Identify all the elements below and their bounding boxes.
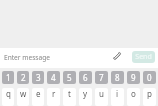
staticText: 6 [83,72,88,83]
button[interactable]: 5 [63,71,76,84]
button[interactable]: 8 [111,71,124,84]
button[interactable]: Send [132,51,155,63]
staticText: 7 [99,72,104,83]
staticText: 0 [147,72,152,83]
staticText: o [131,88,136,99]
staticText: i [116,88,119,99]
button[interactable]: 6 [79,71,92,84]
staticText: 2 [21,72,26,83]
staticText: w [20,88,27,99]
button[interactable]: Attach file [109,49,124,64]
button[interactable]: t [63,88,76,106]
button[interactable]: i [111,88,124,106]
staticText: Enter message [4,53,50,62]
staticText: Send [135,52,152,62]
staticText: y [83,88,88,99]
staticText: p [147,88,152,99]
staticText: 4 [51,72,56,83]
button[interactable]: r [47,88,60,106]
button[interactable]: q [2,88,14,106]
staticText: q [6,88,11,99]
staticText: e [36,88,41,99]
staticText: 8 [115,72,120,83]
button[interactable]: 3 [32,71,44,84]
button[interactable]: 0 [143,71,156,84]
button[interactable]: e [32,88,44,106]
staticText: 3 [36,72,41,83]
button[interactable]: y [79,88,92,106]
button[interactable]: u [95,88,108,106]
button[interactable]: 4 [47,71,60,84]
button[interactable]: 2 [17,71,29,84]
button[interactable]: o [127,88,140,106]
button[interactable]: 9 [127,71,140,84]
button[interactable]: 7 [95,71,108,84]
staticText: 1 [6,72,11,83]
button[interactable]: p [143,88,156,106]
staticText: 9 [131,72,136,83]
button[interactable]: w [17,88,29,106]
staticText: 5 [67,72,72,83]
staticText: t [68,88,71,99]
staticText: r [52,88,56,99]
button[interactable]: 1 [2,71,14,84]
staticText: u [99,88,104,99]
